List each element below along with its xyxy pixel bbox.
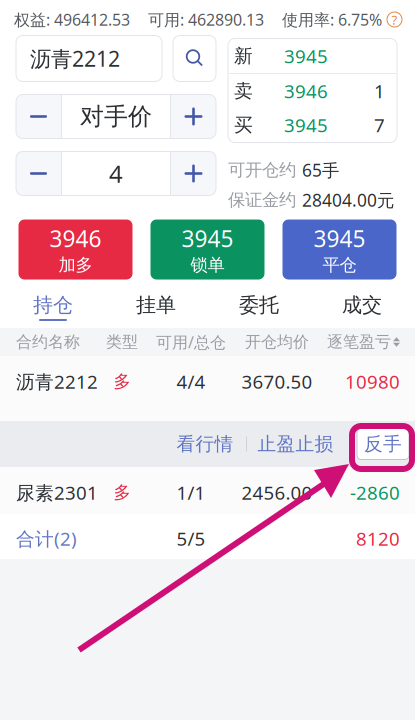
button[interactable]: 反手 xyxy=(338,428,409,459)
staticText: 3945 xyxy=(284,44,328,68)
staticText: 买 xyxy=(234,113,253,136)
button[interactable]: 成交 xyxy=(310,291,413,328)
staticText: 7 xyxy=(374,113,385,137)
staticText: 使用率: 6.75% xyxy=(282,9,382,30)
button[interactable]: 减少 xyxy=(16,151,61,195)
staticText: 3945 xyxy=(181,223,233,253)
button[interactable]: 挂单 xyxy=(104,291,207,328)
staticText: 2456.00 xyxy=(241,480,312,505)
staticText: 可用: 462890.13 xyxy=(148,9,264,30)
staticText: 1/1 xyxy=(176,480,205,505)
button[interactable]: 合计(2) xyxy=(0,514,415,559)
staticText: 4/4 xyxy=(176,369,205,394)
staticText: 对手价 xyxy=(80,102,152,131)
staticText: 3945 xyxy=(284,113,328,137)
button[interactable]: 搜索 xyxy=(173,35,216,81)
staticText: 逐笔盈亏 xyxy=(327,332,391,352)
staticText: 多 xyxy=(113,482,130,503)
staticText: 成交 xyxy=(342,293,382,317)
staticText: 3946 xyxy=(49,223,101,253)
staticText: 10980 xyxy=(345,369,400,394)
staticText: 锁单 xyxy=(190,254,224,276)
staticText: 多 xyxy=(113,371,130,392)
button[interactable]: 持仓 xyxy=(1,291,104,328)
staticText: 3670.50 xyxy=(241,369,312,394)
button[interactable]: 3946 xyxy=(18,219,132,279)
staticText: 8120 xyxy=(356,526,400,551)
staticText: 持仓 xyxy=(33,293,73,317)
staticText: 卖 xyxy=(234,79,253,102)
staticText: 28404.00元 xyxy=(302,188,394,211)
staticText: 反手 xyxy=(364,432,402,455)
staticText: 类型 xyxy=(106,332,138,352)
button[interactable]: 减少 xyxy=(16,94,61,138)
staticText: 65手 xyxy=(302,158,339,181)
staticText: 可开仓约 xyxy=(228,159,296,181)
staticText: 平仓 xyxy=(322,254,356,276)
staticText: 挂单 xyxy=(136,293,176,317)
staticText: 止盈止损 xyxy=(257,432,333,455)
button[interactable]: 增加 xyxy=(171,151,216,195)
button[interactable]: 3945 xyxy=(150,219,264,279)
staticText: 沥青2212 xyxy=(30,44,120,73)
staticText: 保证金约 xyxy=(228,189,296,211)
staticText: 委托 xyxy=(239,293,279,317)
staticText: 合计(2) xyxy=(16,526,77,551)
staticText: 1 xyxy=(374,79,385,103)
button[interactable]: 尿素2301 xyxy=(0,467,415,514)
staticText: 5/5 xyxy=(176,526,205,551)
button[interactable]: 止盈止损 xyxy=(253,421,338,467)
staticText: 开仓均价 xyxy=(245,332,309,352)
button[interactable]: 3945 xyxy=(282,219,396,279)
staticText: 加多 xyxy=(58,254,92,276)
staticText: 3945 xyxy=(313,223,365,253)
staticText: 尿素2301 xyxy=(16,480,98,505)
staticText: 沥青2212 xyxy=(16,369,98,394)
button[interactable]: 增加 xyxy=(171,94,216,138)
staticText: 4 xyxy=(109,157,123,189)
staticText: 新 xyxy=(234,44,253,67)
staticText: ? xyxy=(391,11,397,28)
staticText: 可用/总仓 xyxy=(156,331,226,353)
staticText: 看行情 xyxy=(176,432,233,455)
staticText: 权益: 496412.53 xyxy=(14,9,130,30)
staticText: -2860 xyxy=(350,480,400,505)
button[interactable]: 沥青2212 xyxy=(16,35,162,81)
staticText: 3946 xyxy=(284,79,328,103)
button[interactable]: 沥青2212 xyxy=(0,356,415,421)
staticText: 合约名称 xyxy=(16,332,80,352)
button[interactable]: 委托 xyxy=(207,291,310,328)
button[interactable]: 看行情 xyxy=(170,421,240,467)
